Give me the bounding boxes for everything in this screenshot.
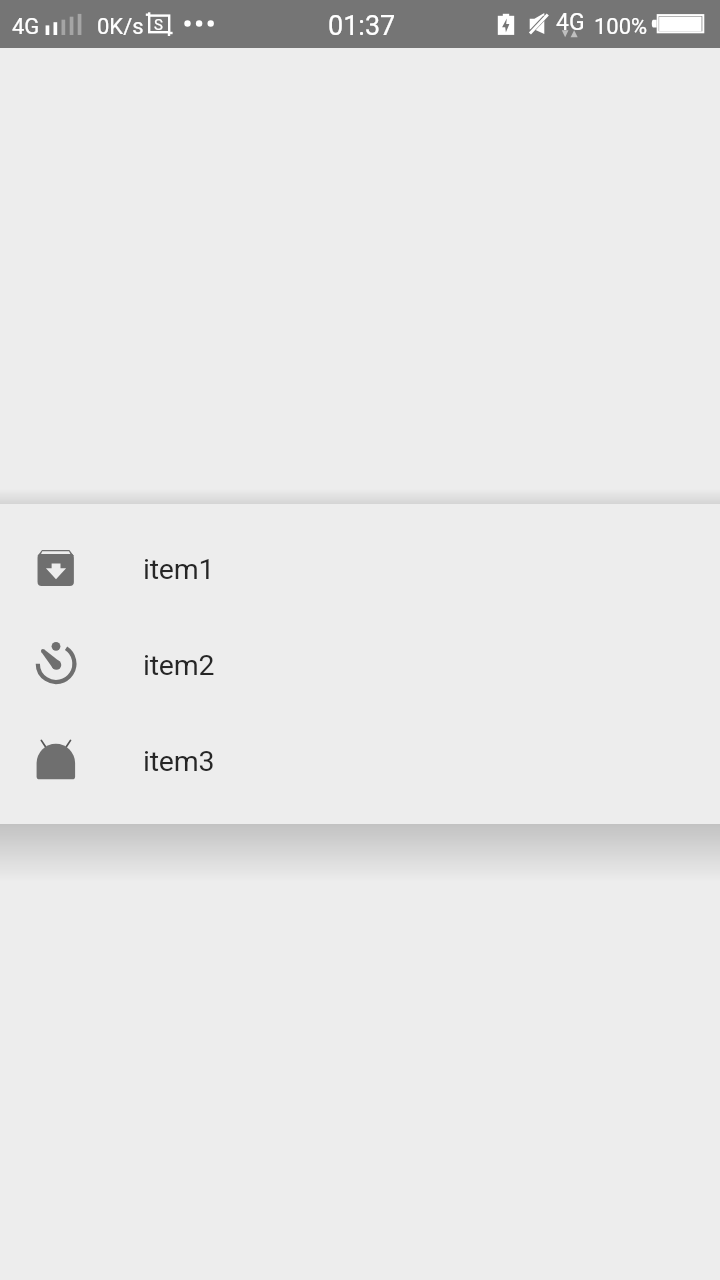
staticText: item2 xyxy=(143,649,215,682)
other: Android xyxy=(31,736,80,785)
button[interactable]: Android xyxy=(0,712,720,808)
button[interactable]: Timer xyxy=(0,616,720,712)
staticText: 01:37 xyxy=(328,10,396,42)
staticText: 100% xyxy=(594,14,648,40)
staticText: 0K/s xyxy=(97,14,144,40)
staticText: 4G xyxy=(12,14,40,40)
staticText: 4G xyxy=(556,9,585,36)
button[interactable]: Archive xyxy=(0,520,720,616)
other: Archive xyxy=(31,544,80,593)
other: Timer xyxy=(31,640,80,689)
staticText: item3 xyxy=(143,745,215,778)
staticText: S xyxy=(154,16,163,34)
staticText: item1 xyxy=(143,553,215,586)
